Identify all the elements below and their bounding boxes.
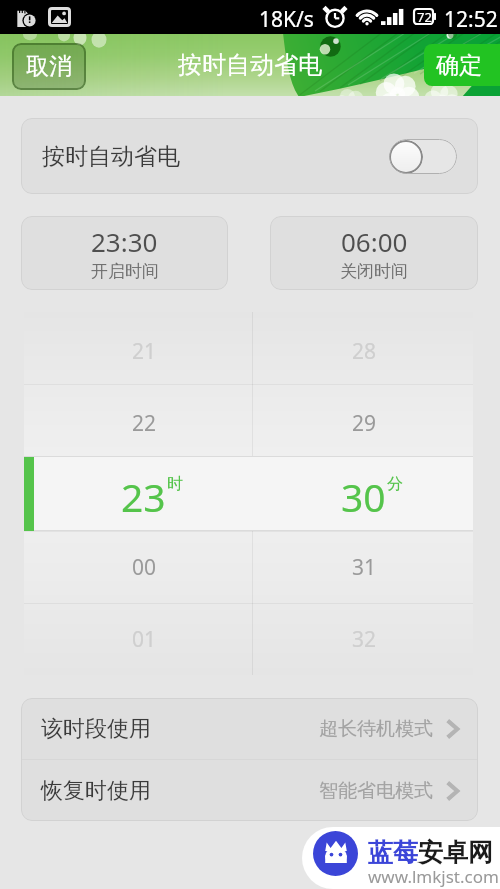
button[interactable]: 恢复时使用 xyxy=(21,760,478,821)
button[interactable]: 该时段使用 xyxy=(21,698,478,759)
staticText: 28 xyxy=(352,337,377,366)
button[interactable]: 29 xyxy=(314,387,414,459)
staticText: 30 xyxy=(341,470,386,523)
staticText: 超长待机模式 xyxy=(319,717,433,741)
button[interactable]: 06:00 xyxy=(270,216,478,290)
button[interactable]: 21 xyxy=(94,315,194,387)
staticText: 按时自动省电 xyxy=(178,50,322,80)
staticText: 按时自动省电 xyxy=(42,142,180,171)
staticText: 23:30 xyxy=(91,224,158,259)
staticText: 蓝莓 xyxy=(368,837,418,868)
staticText: 该时段使用 xyxy=(41,715,151,743)
staticText: 23 xyxy=(121,470,166,523)
button[interactable]: 23 xyxy=(91,459,211,534)
staticText: 智能省电模式 xyxy=(319,779,433,803)
staticText: 00 xyxy=(132,553,157,582)
button[interactable]: 按时自动省电 xyxy=(21,118,478,194)
staticText: 关闭时间 xyxy=(340,261,408,282)
staticText: 18K/s xyxy=(259,5,314,34)
staticText: www.lmkjst.com xyxy=(368,865,499,888)
button[interactable]: 30 xyxy=(311,459,431,534)
staticText: 开启时间 xyxy=(91,261,159,282)
button[interactable]: Toggle scheduled power saving xyxy=(389,139,457,174)
staticText: 安卓网 xyxy=(418,837,493,868)
staticText: 恢复时使用 xyxy=(41,777,151,805)
staticText: 06:00 xyxy=(341,224,408,259)
staticText: 12:52 xyxy=(444,5,498,34)
button[interactable]: 32 xyxy=(314,603,414,675)
button[interactable]: 23:30 xyxy=(21,216,228,290)
button[interactable]: 01 xyxy=(94,603,194,675)
button[interactable]: 22 xyxy=(94,387,194,459)
button[interactable]: 确定 xyxy=(424,44,500,86)
staticText: 取消 xyxy=(26,52,72,81)
staticText: 32 xyxy=(352,625,377,654)
button[interactable]: 31 xyxy=(314,531,414,603)
staticText: 21 xyxy=(132,337,157,366)
staticText: 01 xyxy=(132,625,157,654)
staticText: 31 xyxy=(352,553,377,582)
button[interactable]: 取消 xyxy=(12,43,86,90)
button[interactable]: 00 xyxy=(94,531,194,603)
staticText: 分 xyxy=(387,474,403,494)
staticText: 29 xyxy=(352,409,377,438)
staticText: 时 xyxy=(167,474,183,494)
button[interactable]: 28 xyxy=(314,315,414,387)
staticText: 72 xyxy=(417,8,432,25)
staticText: 22 xyxy=(132,409,157,438)
staticText: 确定 xyxy=(436,51,482,80)
